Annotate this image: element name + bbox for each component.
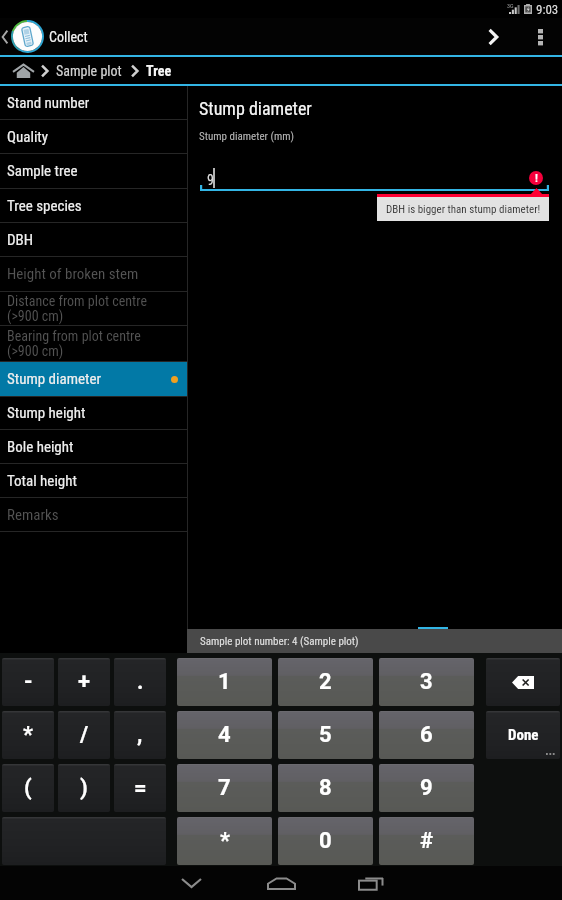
- staticText: Total height: [7, 472, 77, 490]
- button[interactable]: Stump diameter: [0, 362, 187, 396]
- staticText: 7: [218, 775, 231, 801]
- staticText: Distance from plot centre (>900 cm): [7, 293, 147, 324]
- staticText: 3G: [507, 2, 514, 9]
- staticText: ): [80, 775, 88, 801]
- staticText: .: [137, 669, 144, 695]
- button[interactable]: Navigate up: [0, 18, 44, 55]
- staticText: !: [535, 172, 538, 185]
- button[interactable]: Stump height: [0, 397, 187, 429]
- staticText: *: [23, 722, 33, 748]
- staticText: Bearing from plot centre (>900 cm): [7, 328, 141, 359]
- button[interactable]: #: [379, 817, 474, 865]
- button[interactable]: *: [177, 817, 272, 865]
- button[interactable]: (: [2, 764, 54, 812]
- button[interactable]: -: [2, 658, 54, 706]
- button[interactable]: 7: [177, 764, 272, 812]
- staticText: Stump diameter: [7, 370, 102, 388]
- button[interactable]: DBH: [0, 223, 187, 256]
- staticText: 9:03: [536, 2, 559, 17]
- button[interactable]: 2: [278, 658, 373, 706]
- button[interactable]: Quality: [0, 120, 187, 153]
- staticText: 9: [420, 775, 433, 801]
- staticText: 2: [319, 669, 332, 695]
- button[interactable]: 0: [278, 817, 373, 865]
- staticText: 1: [218, 669, 231, 695]
- button[interactable]: .: [114, 658, 166, 706]
- staticText: Remarks: [7, 506, 59, 524]
- button[interactable]: More options: [521, 18, 562, 55]
- button[interactable]: Delete: [486, 658, 560, 706]
- staticText: Stump diameter: [199, 98, 312, 119]
- button[interactable]: Home: [11, 57, 35, 84]
- staticText: Collect: [49, 29, 88, 45]
- staticText: 4: [218, 722, 231, 748]
- button[interactable]: ): [58, 764, 110, 812]
- button[interactable]: 6: [379, 711, 474, 759]
- button[interactable]: Tree: [146, 63, 172, 79]
- button[interactable]: =: [114, 764, 166, 812]
- button[interactable]: ,: [114, 711, 166, 759]
- staticText: 8: [319, 775, 332, 801]
- button[interactable]: Recent apps: [326, 866, 416, 900]
- staticText: (: [24, 775, 32, 801]
- staticText: ,: [137, 722, 143, 748]
- button[interactable]: Height of broken stem: [0, 257, 187, 291]
- staticText: /: [80, 722, 89, 748]
- staticText: Sample plot number: 4 (Sample plot): [200, 635, 359, 648]
- button[interactable]: Bearing from plot centre (>900 cm): [0, 326, 187, 361]
- button[interactable]: 9: [379, 764, 474, 812]
- button[interactable]: 4: [177, 711, 272, 759]
- staticText: Stand number: [7, 94, 90, 112]
- staticText: #: [420, 828, 434, 854]
- button[interactable]: 8: [278, 764, 373, 812]
- button[interactable]: Sample plot number: 4 (Sample plot): [187, 629, 562, 653]
- staticText: *: [220, 828, 230, 854]
- staticText: =: [134, 775, 147, 801]
- staticText: 9: [207, 172, 214, 188]
- button[interactable]: Tree species: [0, 189, 187, 222]
- staticText: Height of broken stem: [7, 265, 139, 283]
- staticText: 5: [319, 722, 332, 748]
- button[interactable]: Hide keyboard: [146, 866, 236, 900]
- button[interactable]: 5: [278, 711, 373, 759]
- button[interactable]: Home: [236, 866, 326, 900]
- staticText: DBH is bigger than stump diameter!: [386, 203, 541, 216]
- staticText: 3: [420, 669, 433, 695]
- button[interactable]: Sample plot: [56, 63, 122, 79]
- button[interactable]: Total height: [0, 464, 187, 497]
- button[interactable]: Bole height: [0, 430, 187, 463]
- staticText: Tree species: [7, 197, 82, 215]
- staticText: Done: [508, 726, 539, 744]
- staticText: Quality: [7, 128, 49, 146]
- staticText: 0: [319, 828, 332, 854]
- button[interactable]: 3: [379, 658, 474, 706]
- staticText: Sample tree: [7, 162, 78, 180]
- staticText: Bole height: [7, 438, 74, 456]
- button[interactable]: Stand number: [0, 86, 187, 119]
- staticText: Stump height: [7, 404, 86, 422]
- button[interactable]: Remarks: [0, 498, 187, 531]
- staticText: -: [24, 669, 33, 695]
- staticText: +: [78, 669, 91, 695]
- button[interactable]: Done: [486, 711, 560, 759]
- button[interactable]: Sample tree: [0, 154, 187, 188]
- button[interactable]: Distance from plot centre (>900 cm): [0, 292, 187, 325]
- staticText: 6: [420, 722, 433, 748]
- button[interactable]: /: [58, 711, 110, 759]
- button[interactable]: *: [2, 711, 54, 759]
- staticText: Stump diameter (mm): [199, 130, 295, 143]
- button[interactable]: Space: [2, 817, 166, 865]
- button[interactable]: 1: [177, 658, 272, 706]
- staticText: DBH: [7, 231, 34, 249]
- button[interactable]: +: [58, 658, 110, 706]
- button[interactable]: Next: [481, 18, 521, 55]
